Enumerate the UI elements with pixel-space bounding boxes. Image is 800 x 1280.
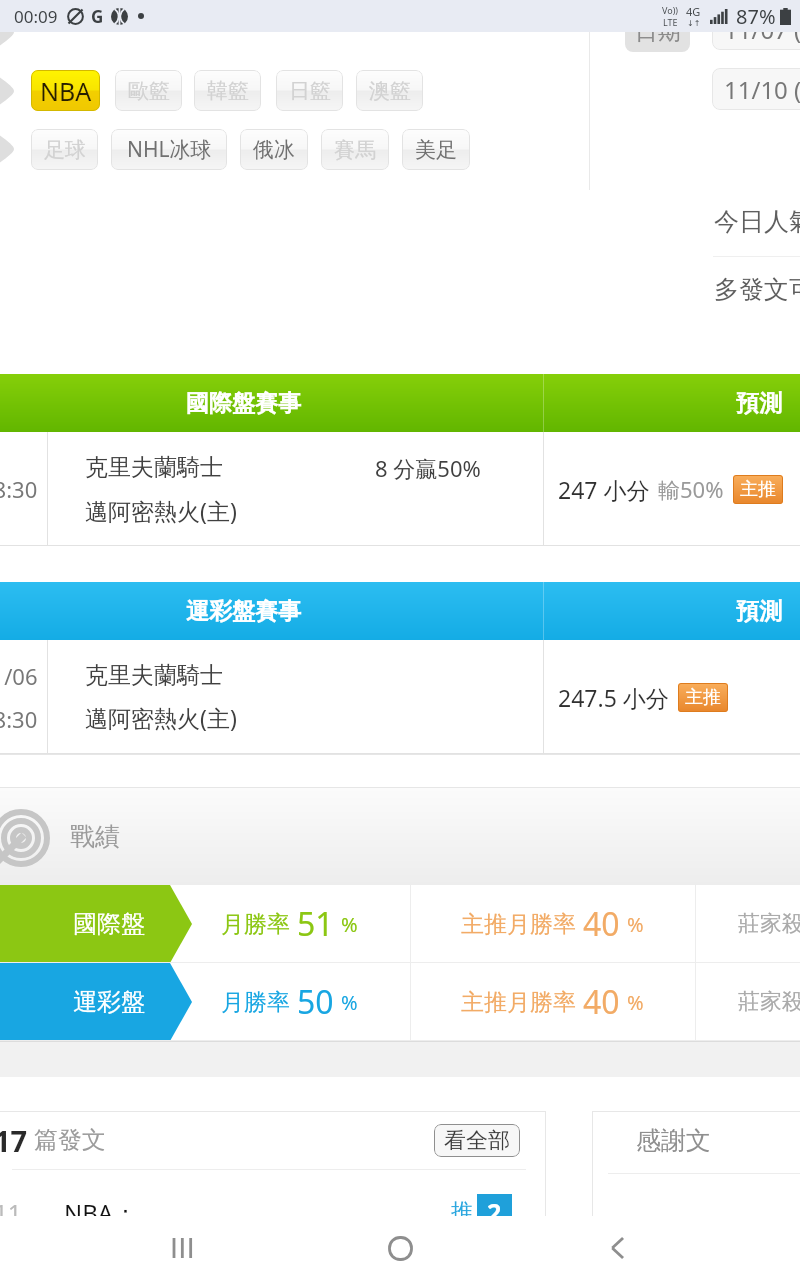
staticText: % xyxy=(341,911,358,938)
staticText: 韓籃 xyxy=(207,78,249,104)
button[interactable]: 澳籃 xyxy=(356,70,423,111)
staticText: 推 xyxy=(451,1198,473,1226)
staticText: 國際盤 xyxy=(73,909,145,939)
staticText: 40 xyxy=(583,980,620,1024)
staticText: 運彩盤 xyxy=(73,987,145,1017)
button[interactable]: 08:30 xyxy=(0,432,800,546)
staticText: 月勝率 xyxy=(221,910,290,939)
staticText: 賽馬 xyxy=(334,137,376,163)
staticText: 主推月勝率 xyxy=(461,910,576,939)
staticText: 克里夫蘭騎士 xyxy=(85,661,223,690)
staticText: 247.5 小分 xyxy=(558,682,669,713)
staticText: 邁阿密熱火(主) xyxy=(85,495,237,526)
button[interactable]: 賽馬 xyxy=(321,129,389,170)
staticText: NHL冰球 xyxy=(127,135,212,164)
staticText: 輸50% xyxy=(658,474,724,504)
staticText: 87% xyxy=(736,3,776,30)
staticText: 17 xyxy=(0,1121,28,1160)
staticText: 莊家殺 xyxy=(738,988,800,1016)
staticText: NBA： xyxy=(64,1196,138,1229)
button[interactable]: Back xyxy=(582,1216,654,1280)
staticText: 主推月勝率 xyxy=(461,988,576,1017)
button[interactable]: 俄冰 xyxy=(240,129,308,170)
staticText: 克里夫蘭騎士 xyxy=(85,453,223,482)
staticText: 戰績 xyxy=(70,821,120,852)
button[interactable]: 日期 xyxy=(625,10,690,52)
staticText: 邁阿密熱火(主) xyxy=(85,702,237,733)
button[interactable]: 美足 xyxy=(402,129,470,170)
staticText: 4G xyxy=(686,4,701,19)
button[interactable]: 11/07 ( xyxy=(712,8,800,50)
button[interactable]: Recents xyxy=(146,1216,218,1280)
button[interactable]: 11/06 xyxy=(0,640,800,754)
staticText: 2 xyxy=(487,1195,502,1229)
staticText: 11/06 xyxy=(0,661,38,691)
staticText: 51 xyxy=(297,902,334,946)
staticText: 篇發文 xyxy=(34,1125,106,1155)
staticText: 莊家殺 xyxy=(738,910,800,938)
staticText: NBA xyxy=(40,74,92,108)
staticText: 預測 xyxy=(736,597,782,626)
staticText: 8 分贏50% xyxy=(375,453,481,483)
staticText: 預測 xyxy=(736,389,782,418)
staticText: 主推 xyxy=(685,686,721,709)
staticText: 國際盤賽事 xyxy=(186,389,301,418)
staticText: 澳籃 xyxy=(369,78,411,104)
staticText: 今日人氣 xyxy=(714,206,800,237)
staticText: 11/07 ( xyxy=(724,13,800,46)
staticText: 足球 xyxy=(44,137,86,163)
staticText: 歐籃 xyxy=(128,78,170,104)
staticText: 11 xyxy=(0,1196,22,1229)
staticText: 多發文可 xyxy=(714,274,800,305)
button[interactable]: 日籃 xyxy=(276,70,343,111)
staticText: % xyxy=(627,989,644,1016)
button[interactable]: NHL冰球 xyxy=(111,129,227,170)
button[interactable]: 11/10 ( xyxy=(712,68,800,110)
staticText: 日籃 xyxy=(289,78,331,104)
staticText: LTE xyxy=(663,16,678,28)
staticText: 看全部 xyxy=(444,1127,510,1155)
staticText: 11/10 ( xyxy=(724,73,800,106)
button[interactable]: 歐籃 xyxy=(115,70,182,111)
staticText: 感謝文 xyxy=(636,1125,711,1156)
staticText: 08:30 xyxy=(0,704,38,734)
staticText: 月勝率 xyxy=(221,988,290,1017)
staticText: 40 xyxy=(583,902,620,946)
staticText: % xyxy=(341,989,358,1016)
staticText: G xyxy=(91,5,104,28)
button[interactable]: Home xyxy=(364,1216,436,1280)
staticText: 00:09 xyxy=(14,5,58,28)
staticText: 運彩盤賽事 xyxy=(186,597,301,626)
button[interactable]: 看全部 xyxy=(434,1124,520,1157)
staticText: 50 xyxy=(297,980,334,1024)
staticText: 日期 xyxy=(635,17,681,46)
button[interactable]: 運彩盤 xyxy=(0,963,800,1041)
staticText: ↓↑ xyxy=(687,19,701,28)
button[interactable]: 足球 xyxy=(31,129,98,170)
staticText: 美足 xyxy=(415,137,457,163)
staticText: % xyxy=(627,911,644,938)
staticText: 主推 xyxy=(740,478,776,501)
button[interactable]: 韓籃 xyxy=(194,70,261,111)
button[interactable]: 11 xyxy=(0,1187,546,1237)
staticText: 俄冰 xyxy=(253,137,295,163)
button[interactable]: NBA xyxy=(31,70,100,111)
staticText: Vo)) xyxy=(662,4,679,16)
button[interactable]: 國際盤 xyxy=(0,885,800,963)
staticText: 247 小分 xyxy=(558,474,650,505)
staticText: 08:30 xyxy=(0,474,38,504)
